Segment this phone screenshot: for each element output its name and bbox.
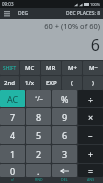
- button[interactable]: M+: [62, 61, 82, 75]
- button[interactable]: 4: [0, 126, 25, 144]
- staticText: %: [61, 93, 69, 105]
- button[interactable]: SHIFT: [0, 61, 19, 75]
- staticText: RND: [35, 177, 43, 182]
- button[interactable]: EXP: [41, 76, 61, 90]
- staticText: =: [88, 165, 94, 177]
- button[interactable]: ×: [78, 108, 103, 125]
- staticText: 6: [62, 129, 68, 141]
- button[interactable]: DEC PLACES: 8: [66, 10, 101, 17]
- staticText: SHIFT: [3, 65, 17, 72]
- button[interactable]: %: [52, 90, 77, 107]
- staticText: 1/x: [25, 79, 35, 87]
- staticText: 7: [10, 111, 16, 123]
- staticText: 8: [36, 111, 42, 123]
- staticText: +: [88, 148, 94, 160]
- button[interactable]: 6: [52, 126, 77, 144]
- button[interactable]: (: [62, 76, 82, 90]
- button[interactable]: 3: [52, 145, 77, 163]
- staticText: EXP: [46, 79, 57, 87]
- button[interactable]: 0: [0, 164, 25, 177]
- button[interactable]: 2: [26, 145, 51, 163]
- button[interactable]: ): [83, 76, 103, 90]
- staticText: 60 + (10% of 60): [3, 21, 100, 31]
- staticText: 100%: [90, 2, 101, 7]
- button[interactable]: .: [26, 164, 51, 177]
- button[interactable]: ⁺/–: [26, 90, 51, 107]
- staticText: MC: [25, 64, 35, 72]
- button[interactable]: Menu: [2, 9, 11, 18]
- button[interactable]: 2nd: [0, 76, 19, 90]
- button[interactable]: –: [78, 126, 103, 144]
- staticText: MR: [46, 64, 56, 72]
- button[interactable]: MC: [20, 61, 40, 75]
- button[interactable]: AC: [0, 90, 25, 107]
- button[interactable]: 5: [26, 126, 51, 144]
- button[interactable]: +: [78, 145, 103, 163]
- button[interactable]: 8: [26, 108, 51, 125]
- button[interactable]: 1/x: [20, 76, 40, 90]
- staticText: 2: [36, 148, 42, 160]
- button[interactable]: Delete: [52, 164, 77, 177]
- staticText: DEG: [18, 10, 29, 17]
- button[interactable]: 1: [0, 145, 25, 163]
- staticText: (: [71, 79, 73, 87]
- button[interactable]: M−: [83, 61, 103, 75]
- staticText: 1: [10, 148, 16, 160]
- staticText: 0: [10, 165, 16, 177]
- button[interactable]: MR: [41, 61, 61, 75]
- staticText: AC: [7, 93, 19, 105]
- staticText: x!: [11, 177, 14, 182]
- button[interactable]: 7: [0, 108, 25, 125]
- staticText: M−: [89, 64, 98, 72]
- staticText: ×: [88, 111, 94, 123]
- staticText: 4: [10, 129, 16, 141]
- staticText: –: [88, 129, 93, 141]
- staticText: DEL: [61, 177, 68, 182]
- staticText: 6: [3, 34, 100, 56]
- staticText: ANS: [87, 177, 95, 182]
- staticText: ): [92, 79, 94, 87]
- staticText: 5: [36, 129, 42, 141]
- button[interactable]: DEG: [18, 10, 29, 17]
- button[interactable]: =: [78, 164, 103, 177]
- staticText: 2nd: [4, 79, 15, 87]
- button[interactable]: 9: [52, 108, 77, 125]
- staticText: 9: [62, 111, 68, 123]
- staticText: DEC PLACES: 8: [66, 10, 101, 17]
- staticText: 09:03: [2, 1, 14, 7]
- staticText: .: [37, 165, 40, 177]
- button[interactable]: ÷: [78, 90, 103, 107]
- staticText: ⁺/–: [35, 94, 43, 103]
- staticText: M+: [68, 64, 77, 72]
- staticText: 3: [62, 148, 68, 160]
- staticText: ÷: [88, 93, 94, 105]
